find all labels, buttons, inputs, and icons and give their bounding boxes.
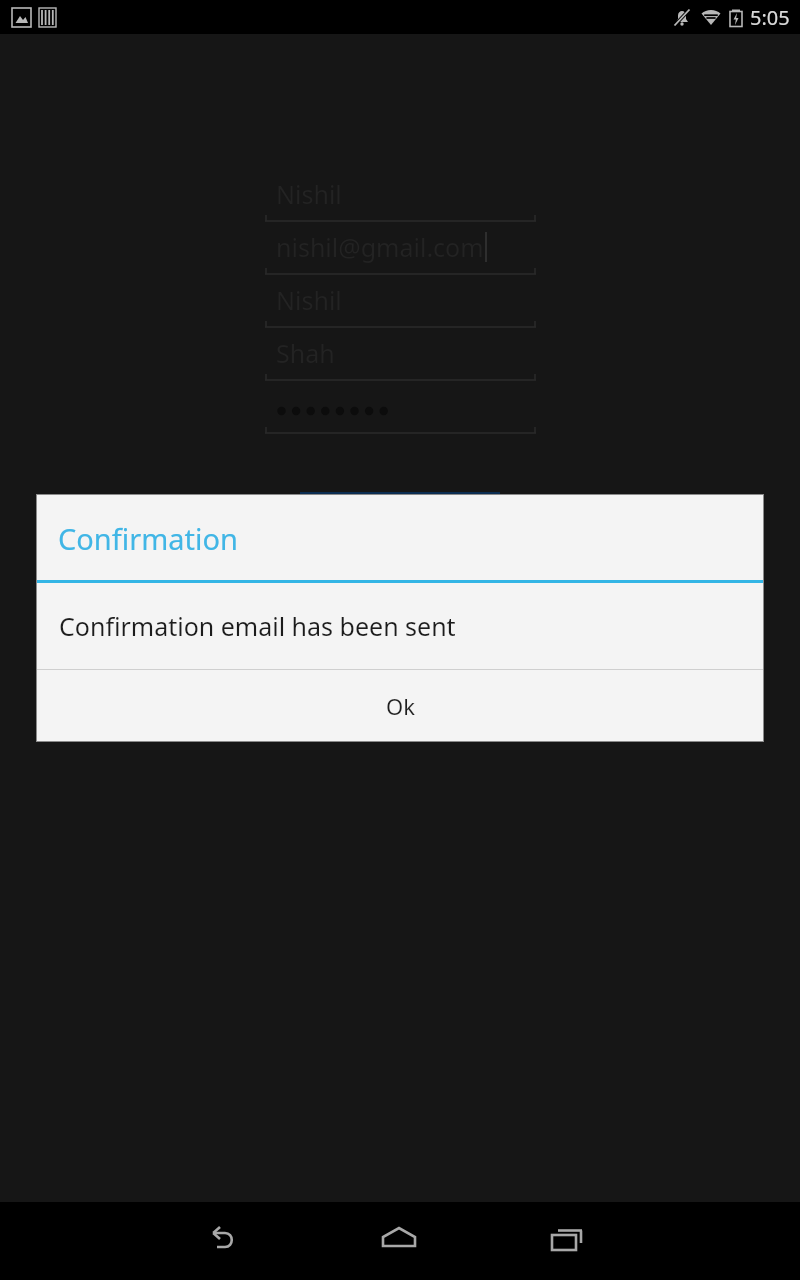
staticText: Confirmation email has been sent (59, 609, 456, 643)
staticText: Nishil (276, 177, 342, 211)
button[interactable]: Back (186, 1206, 274, 1276)
button[interactable]: Recent apps (526, 1206, 614, 1276)
staticText: 5:05 (750, 4, 790, 31)
staticText: Confirmation (58, 519, 239, 558)
staticText: Ok (386, 691, 415, 721)
staticText: Nishil (276, 283, 342, 317)
button[interactable]: Ok (37, 670, 763, 741)
button[interactable]: Sign Up (300, 492, 500, 549)
staticText: nishil@gmail.com (276, 230, 484, 264)
button[interactable]: Home (356, 1206, 444, 1276)
staticText: Shah (276, 336, 335, 370)
